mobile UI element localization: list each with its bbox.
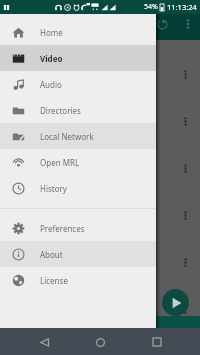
button[interactable]: Item menu [177,207,193,223]
button[interactable]: Audio [0,71,156,97]
staticText: 05:12 [62,113,82,123]
button[interactable]: Open MRL [0,149,156,175]
button[interactable]: Item menu [177,160,193,176]
button[interactable]: About [0,241,156,267]
button[interactable]: History [0,175,156,201]
staticText: Audio [40,79,62,90]
staticText: 1920x1080 - 48 min - 0431 [62,160,155,170]
staticText: Open MRL [40,157,80,168]
staticText: Directories [40,105,81,116]
button[interactable]: Another movie here [0,94,200,141]
button[interactable]: Recents [144,329,170,355]
staticText: 11:13:24 [167,2,197,12]
staticText: Holiday trip name [62,149,130,160]
staticText: Local Network [40,131,94,142]
staticText: History [40,183,67,194]
button[interactable]: Play [162,289,189,316]
button[interactable]: Item menu [177,301,193,317]
button[interactable]: Item menu [177,113,193,129]
staticText: Home [40,27,63,38]
staticText: 05:12 [62,66,82,76]
button[interactable]: Directories [0,97,156,123]
button[interactable]: Local Network [0,123,156,149]
button[interactable]: Holiday trip name [0,141,200,188]
button[interactable]: Item menu [177,66,193,82]
staticText: Another movie here [62,102,137,113]
staticText: Preferences [40,223,85,234]
button[interactable]: Home [87,329,113,355]
button[interactable]: Item menu [177,254,193,270]
staticText: 1280x720 - 12 min - 01297 [62,207,155,217]
button[interactable]: Last video item [0,282,200,316]
staticText: License [40,275,68,286]
button[interactable]: License [0,267,156,293]
button[interactable]: Short clip name [0,235,200,282]
button[interactable]: Preferences [0,215,156,241]
button[interactable]: Video [0,45,156,71]
button[interactable]: Home [0,19,156,45]
button[interactable]: Clip one sample [0,47,200,94]
staticText: About [40,249,63,260]
button[interactable]: More options [178,14,198,34]
staticText: Video [40,53,63,64]
button[interactable]: Recorded screencast [0,188,200,235]
button[interactable]: Back [31,329,57,355]
staticText: 54% [144,2,158,12]
button[interactable]: Refresh [152,14,172,34]
